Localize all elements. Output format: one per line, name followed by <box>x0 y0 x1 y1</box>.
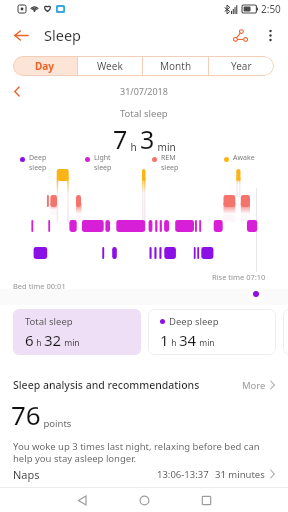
staticText: Sleep <box>44 25 81 45</box>
staticText: Month <box>160 59 192 73</box>
staticText: Light <box>94 153 111 163</box>
staticText: REM <box>161 153 176 163</box>
staticText: More <box>242 379 266 392</box>
staticText: 31/07/2018 <box>120 85 168 97</box>
button[interactable]: More options <box>255 20 285 50</box>
staticText: sleep <box>161 163 179 173</box>
staticText: h <box>34 337 44 349</box>
staticText: Sleep analysis and recommendations <box>13 378 200 392</box>
staticText: min <box>197 337 215 349</box>
button[interactable]: Recent apps <box>175 488 237 512</box>
button[interactable]: Home <box>113 488 175 512</box>
button[interactable]: Deep sleep <box>148 309 276 355</box>
button[interactable]: Day <box>13 56 77 76</box>
staticText: Deep sleep <box>169 315 219 328</box>
staticText: Bed time 00:01 <box>13 281 66 291</box>
button[interactable]: Total sleep <box>13 309 141 355</box>
button[interactable]: Year <box>209 56 274 76</box>
staticText: Naps <box>13 467 40 482</box>
button[interactable]: Naps <box>0 464 288 484</box>
staticText: Rise time 07:10 <box>212 272 266 282</box>
staticText: 34 <box>179 330 197 350</box>
staticText: 1 <box>160 330 169 350</box>
staticText: 2:50 <box>261 2 281 16</box>
staticText: h <box>169 337 179 349</box>
staticText: 32 <box>44 330 62 350</box>
staticText: You woke up 3 times last night, relaxing… <box>13 440 260 465</box>
staticText: Week <box>97 59 123 73</box>
staticText: min <box>155 140 176 154</box>
button[interactable]: Back <box>5 19 37 51</box>
staticText: 6 <box>25 330 34 350</box>
button[interactable]: Share <box>225 20 255 50</box>
staticText: sleep <box>29 163 47 173</box>
staticText: Total sleep <box>25 315 73 328</box>
button[interactable]: Month <box>143 56 208 76</box>
staticText: Day <box>35 59 55 73</box>
staticText: h <box>128 140 140 154</box>
staticText: Awake <box>233 153 255 163</box>
staticText: 13:06-13:37 <box>157 468 209 481</box>
button[interactable]: Back <box>51 488 113 512</box>
staticText: Total sleep <box>120 107 168 120</box>
button[interactable]: Week <box>78 56 142 76</box>
button[interactable] <box>283 309 288 355</box>
staticText: Year <box>231 59 252 73</box>
staticText: min <box>62 337 80 349</box>
button[interactable]: Previous day <box>9 83 25 99</box>
staticText: points <box>41 417 72 430</box>
staticText: 76 <box>11 397 41 432</box>
staticText: sleep <box>94 163 112 173</box>
staticText: Deep <box>29 153 47 163</box>
button[interactable]: More <box>242 376 275 394</box>
staticText: 31 minutes <box>215 468 265 481</box>
staticText: 3 <box>140 122 155 156</box>
staticText: 7 <box>113 122 128 156</box>
